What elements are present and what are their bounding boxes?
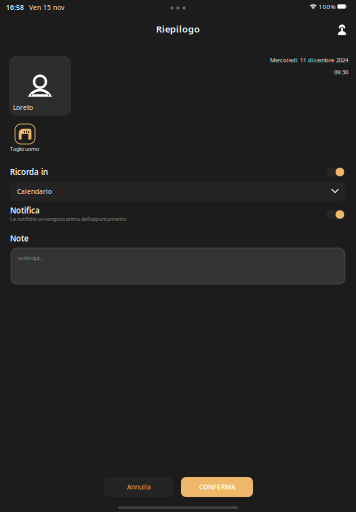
staticText: CONFERMA — [199, 482, 235, 492]
staticText: Le notifiche avvengono prima dell'appunt… — [10, 215, 126, 222]
staticText: Riepilogo — [156, 23, 200, 35]
staticText: Taglio uomo — [10, 145, 39, 153]
staticText: Annulla — [127, 482, 151, 492]
button[interactable]: Note — [11, 248, 345, 284]
staticText: Note — [10, 233, 29, 244]
staticText: Mercoledì 11 dicembre 2024 — [270, 56, 348, 64]
staticText: 100% — [318, 2, 335, 11]
button[interactable]: Ricorda in — [326, 167, 344, 176]
staticText: Loreto — [13, 103, 33, 112]
staticText: Notifica — [10, 205, 40, 216]
staticText: Calendario — [17, 187, 52, 196]
button[interactable]: Annulla — [104, 477, 174, 497]
staticText: 16:58 — [6, 3, 24, 12]
button[interactable]: Calendario — [10, 182, 346, 201]
button[interactable]: Loreto — [9, 56, 71, 116]
staticText: Ven 15 nov — [29, 3, 64, 12]
button[interactable]: Taglio uomo — [15, 124, 35, 144]
staticText: 09:30 — [334, 68, 348, 76]
button[interactable]: CONFERMA — [181, 477, 253, 497]
staticText: scrivi qui... — [18, 254, 45, 262]
staticText: Ricorda in — [10, 167, 48, 177]
button[interactable]: Notifica — [326, 210, 344, 219]
button[interactable]: Account — [332, 20, 352, 40]
